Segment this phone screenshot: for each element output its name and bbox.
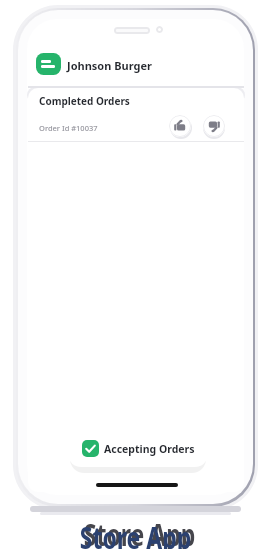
staticText: Johnson Burger [67, 58, 152, 73]
staticText: Store App [0, 516, 271, 549]
button[interactable] [203, 115, 225, 137]
button[interactable]: Accepting Orders [68, 431, 208, 467]
staticText: Store App [4, 513, 271, 549]
button[interactable] [169, 115, 191, 137]
staticText: Completed Orders [39, 94, 130, 108]
staticText: Order Id #10037 [39, 123, 98, 133]
staticText: Accepting Orders [104, 442, 195, 456]
button[interactable] [36, 53, 61, 75]
